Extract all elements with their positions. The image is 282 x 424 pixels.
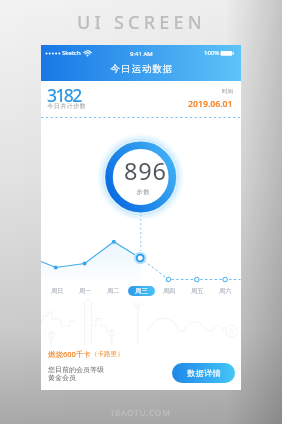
staticText: 时间 xyxy=(222,88,233,95)
staticText: 2019.06.01 xyxy=(188,98,233,109)
staticText: 步数 xyxy=(136,188,150,196)
staticText: 周四 xyxy=(163,287,176,295)
staticText: 今日运动数据 xyxy=(110,63,173,75)
button[interactable]: 数据详情 xyxy=(172,363,235,383)
staticText: UI SCREEN xyxy=(77,10,206,35)
staticText: 周日 xyxy=(51,287,64,295)
staticText: Sketch xyxy=(62,49,81,57)
staticText: 燃烧600千卡 xyxy=(48,349,91,359)
staticText: 您目前的会员等级 xyxy=(48,365,104,374)
staticText: 3182 xyxy=(47,83,81,107)
staticText: 黄金会员 xyxy=(48,373,76,382)
staticText: 周五 xyxy=(191,287,204,295)
button[interactable]: 周三 xyxy=(128,286,155,296)
staticText: IBAOTU.COM xyxy=(111,407,171,418)
staticText: 周六 xyxy=(219,287,232,295)
staticText: 周一 xyxy=(79,287,92,295)
staticText: 周二 xyxy=(107,287,120,295)
staticText: （卡路里） xyxy=(91,350,124,358)
staticText: 100% xyxy=(204,49,220,57)
staticText: 896 xyxy=(124,155,167,185)
staticText: 数据详情 xyxy=(187,368,221,378)
staticText: 9:41 AM xyxy=(130,50,153,58)
staticText: 周三 xyxy=(135,287,148,295)
staticText: 今日共计步数 xyxy=(47,102,86,110)
